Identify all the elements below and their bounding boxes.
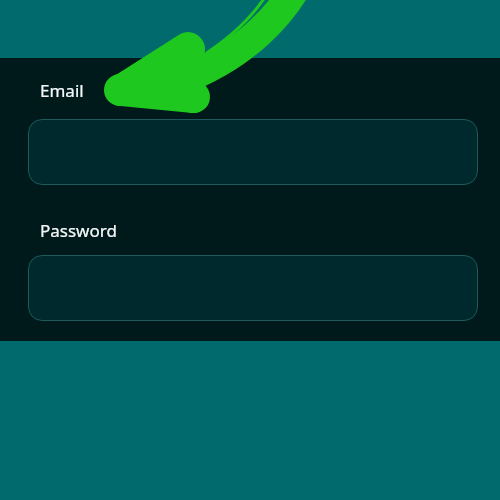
staticText: Email (40, 79, 84, 102)
button[interactable]: Password input field (28, 255, 478, 321)
staticText: Password (40, 219, 117, 242)
button[interactable]: Email input field (28, 119, 478, 185)
other: Arrow pointing to the Email field (0, 0, 500, 500)
